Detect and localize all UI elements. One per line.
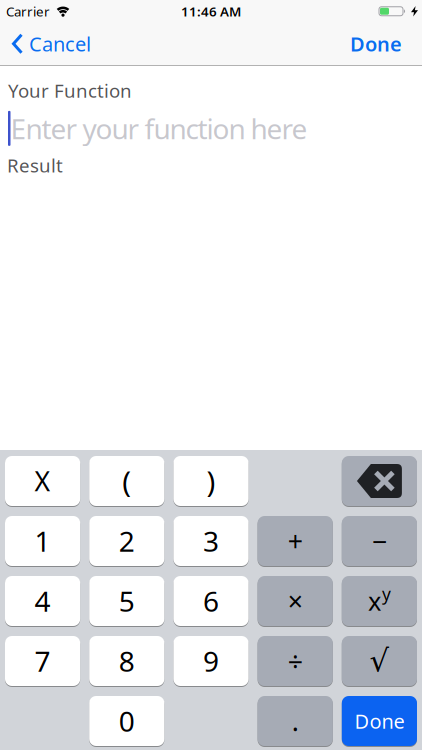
staticText: + xyxy=(288,523,303,559)
button[interactable]: 9 xyxy=(173,636,249,686)
staticText: 6 xyxy=(203,582,219,620)
staticText: . xyxy=(292,703,299,739)
staticText: 9 xyxy=(203,642,219,680)
button[interactable]: − xyxy=(342,516,417,566)
staticText: − xyxy=(372,523,387,559)
staticText: Cancel xyxy=(29,30,91,57)
staticText: x xyxy=(368,584,381,618)
staticText: × xyxy=(288,583,303,619)
staticText: 2 xyxy=(119,522,135,560)
button[interactable]: √ xyxy=(342,636,417,686)
staticText: 1 xyxy=(35,522,51,560)
staticText: Enter your function here xyxy=(10,110,307,147)
button[interactable]: 8 xyxy=(89,636,164,686)
button[interactable]: Cancel xyxy=(0,30,91,57)
button[interactable]: 4 xyxy=(5,576,80,626)
staticText: X xyxy=(35,463,51,499)
button[interactable]: + xyxy=(258,516,333,566)
button[interactable]: . xyxy=(258,696,333,746)
button[interactable]: ( xyxy=(89,456,164,506)
button[interactable]: ) xyxy=(173,456,249,506)
staticText: 5 xyxy=(119,582,135,620)
button[interactable]: × xyxy=(258,576,333,626)
button[interactable]: Done xyxy=(350,30,422,57)
staticText: Done xyxy=(350,30,402,57)
button[interactable]: Delete xyxy=(342,456,417,506)
staticText: ) xyxy=(206,461,215,500)
button[interactable]: 5 xyxy=(89,576,164,626)
staticText: √ xyxy=(369,644,389,678)
staticText: ÷ xyxy=(288,643,303,679)
staticText: y xyxy=(382,582,391,605)
button[interactable]: x xyxy=(342,576,417,626)
button[interactable]: 1 xyxy=(5,516,80,566)
staticText: 7 xyxy=(35,642,51,680)
button[interactable]: 7 xyxy=(5,636,80,686)
staticText: Result xyxy=(7,153,63,178)
button[interactable]: Done xyxy=(342,696,417,746)
button[interactable]: 6 xyxy=(173,576,249,626)
button[interactable]: X xyxy=(5,456,80,506)
button[interactable]: 2 xyxy=(89,516,164,566)
staticText: Carrier xyxy=(6,2,50,20)
staticText: 0 xyxy=(119,702,135,740)
staticText: 8 xyxy=(119,642,135,680)
staticText: 3 xyxy=(203,522,219,560)
staticText: 11:46 AM xyxy=(181,2,241,20)
staticText: Your Function xyxy=(8,78,132,103)
button[interactable]: 3 xyxy=(173,516,249,566)
button[interactable]: 0 xyxy=(89,696,164,746)
staticText: Done xyxy=(354,708,404,734)
button[interactable]: ÷ xyxy=(258,636,333,686)
staticText: ( xyxy=(122,461,131,500)
staticText: 4 xyxy=(35,582,51,620)
